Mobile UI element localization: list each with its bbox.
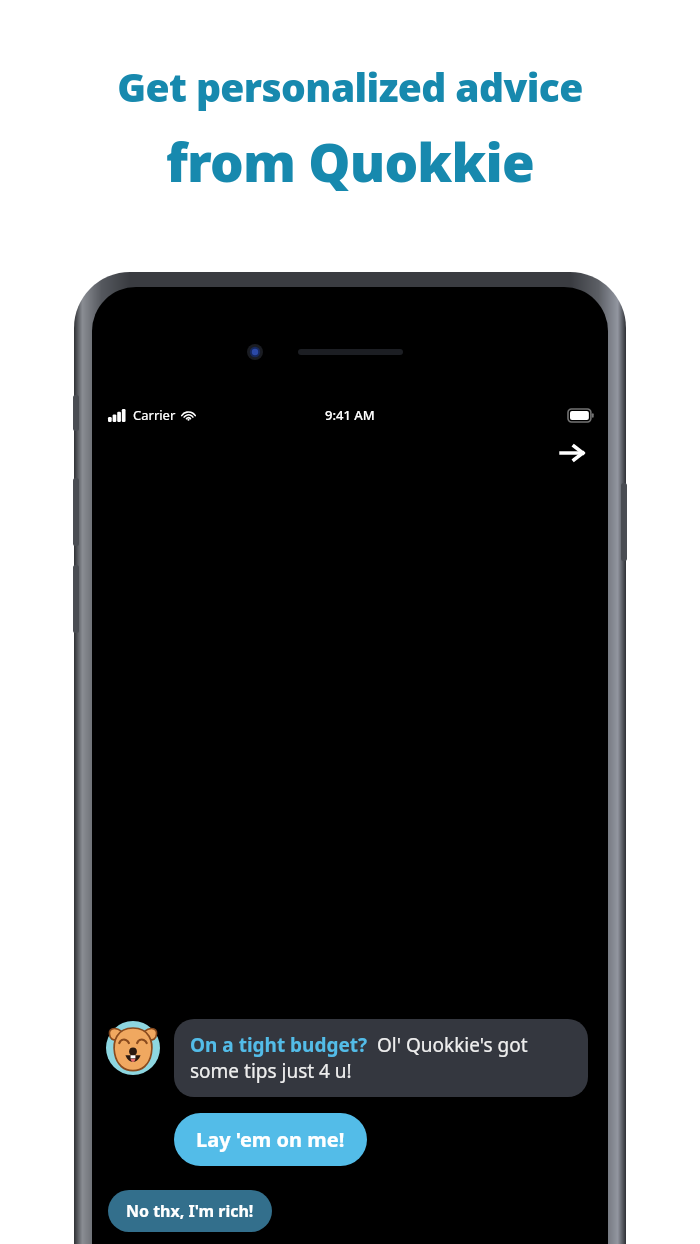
staticText: Get personalized advice [117, 60, 583, 113]
button[interactable]: No thx, I'm rich! [108, 1190, 272, 1232]
staticText: Carrier [133, 406, 176, 424]
staticText: No thx, I'm rich! [126, 1200, 254, 1222]
staticText: from Quokkie [166, 125, 534, 197]
button[interactable]: Skip [550, 431, 594, 475]
staticText: On a tight budget? Ol' Quokkie's got som… [190, 1032, 572, 1084]
button[interactable]: On a tight budget? Ol' Quokkie's got som… [174, 1019, 588, 1097]
staticText: Lay 'em on me! [196, 1126, 345, 1153]
button[interactable]: Lay 'em on me! [174, 1113, 367, 1166]
staticText: 9:41 AM [325, 406, 375, 424]
